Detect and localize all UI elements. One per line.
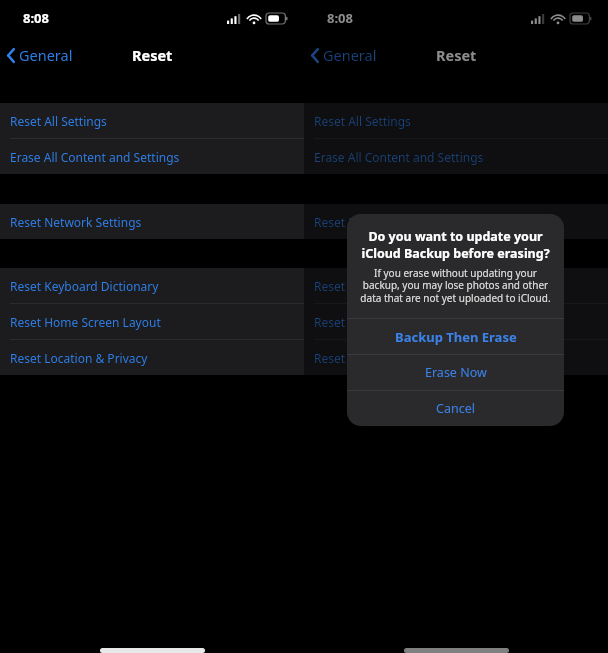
button[interactable]: Reset Keyboard Dictionary bbox=[304, 268, 608, 303]
button[interactable]: Reset Home Screen Layout bbox=[304, 304, 608, 339]
staticText: Reset Keyboard Dictionary bbox=[10, 278, 159, 294]
button[interactable]: Erase All Content and Settings bbox=[304, 139, 608, 174]
staticText: Reset bbox=[132, 45, 173, 65]
staticText: If you erase without updating your backu… bbox=[359, 266, 552, 305]
button[interactable]: Reset Network Settings bbox=[304, 204, 608, 239]
staticText: General bbox=[323, 45, 377, 65]
button[interactable]: Cancel bbox=[347, 391, 564, 426]
staticText: Reset Home Screen Layout bbox=[10, 314, 161, 330]
staticText: Reset All Settings bbox=[314, 113, 411, 129]
staticText: Erase All Content and Settings bbox=[10, 149, 180, 165]
button[interactable]: Erase All Content and Settings bbox=[0, 139, 304, 174]
staticText: Reset Location & Privacy bbox=[10, 350, 148, 366]
button[interactable]: Reset All Settings bbox=[304, 103, 608, 138]
button[interactable]: Backup Then Erase bbox=[347, 319, 564, 354]
staticText: Reset Home Screen Layout bbox=[314, 314, 465, 330]
button[interactable]: Reset Network Settings bbox=[0, 204, 304, 239]
staticText: Erase Now bbox=[425, 364, 487, 381]
button[interactable]: General bbox=[304, 41, 385, 69]
staticText: Cancel bbox=[436, 400, 475, 417]
staticText: Reset All Settings bbox=[10, 113, 107, 129]
staticText: Backup Then Erase bbox=[395, 328, 517, 346]
staticText: Do you want to update your iCloud Backup… bbox=[359, 228, 552, 261]
staticText: Reset Keyboard Dictionary bbox=[314, 278, 463, 294]
staticText: Reset Network Settings bbox=[314, 214, 446, 230]
button[interactable]: Erase Now bbox=[347, 355, 564, 390]
button[interactable]: General bbox=[0, 41, 81, 69]
button[interactable]: Reset Location & Privacy bbox=[304, 340, 608, 375]
button[interactable]: Reset Keyboard Dictionary bbox=[0, 268, 304, 303]
staticText: Reset bbox=[436, 45, 477, 65]
staticText: Reset Location & Privacy bbox=[314, 350, 452, 366]
staticText: General bbox=[19, 45, 73, 65]
staticText: 8:08 bbox=[327, 9, 353, 27]
button[interactable]: Reset All Settings bbox=[0, 103, 304, 138]
staticText: Reset Network Settings bbox=[10, 214, 142, 230]
staticText: 8:08 bbox=[23, 9, 49, 27]
button[interactable]: Reset Home Screen Layout bbox=[0, 304, 304, 339]
button[interactable]: Reset Location & Privacy bbox=[0, 340, 304, 375]
staticText: Erase All Content and Settings bbox=[314, 149, 484, 165]
